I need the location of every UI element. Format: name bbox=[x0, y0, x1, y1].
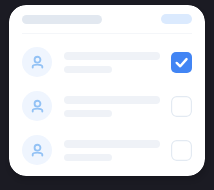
button[interactable]: Select bbox=[9, 128, 205, 172]
button[interactable]: Select bbox=[171, 96, 192, 117]
button[interactable] bbox=[161, 14, 192, 24]
button[interactable]: Selected bbox=[171, 52, 192, 73]
button[interactable]: Select bbox=[9, 84, 205, 128]
button[interactable]: Selected bbox=[9, 40, 205, 84]
button[interactable]: Select bbox=[171, 140, 192, 161]
